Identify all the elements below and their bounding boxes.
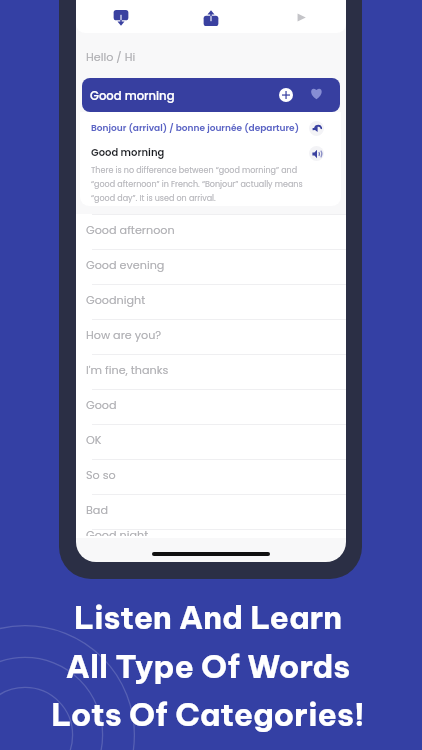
button[interactable]: I'm fine, thanks [76,354,346,389]
button[interactable]: Favorite [310,87,324,101]
button[interactable]: Good night [76,529,346,538]
staticText: Goodnight [86,292,146,308]
button[interactable]: Good morning [82,78,340,112]
button[interactable]: Good evening [76,249,346,284]
button[interactable]: Play [256,0,346,33]
staticText: All Type Of Words [0,646,419,686]
staticText: I'm fine, thanks [86,362,169,378]
button[interactable]: Upload [166,0,256,33]
staticText: Good morning [90,88,175,104]
staticText: Bad [86,502,108,518]
staticText: Good morning [91,145,165,159]
button[interactable]: Bad [76,494,346,529]
staticText: Hello / Hi [86,49,136,65]
staticText: Good afternoon [86,222,175,238]
button[interactable]: Play slowly [309,121,324,136]
staticText: Listen And Learn [0,597,419,637]
staticText: Good evening [86,257,165,273]
button[interactable]: Add to my list [279,88,293,102]
staticText: How are you? [86,327,162,343]
staticText: Good night [86,527,149,536]
button[interactable]: How are you? [76,319,346,354]
button[interactable]: OK [76,424,346,459]
button[interactable]: Goodnight [76,284,346,319]
button[interactable]: Download [76,0,166,33]
staticText: Bonjour (arrival) / bonne journée (depar… [91,122,300,135]
staticText: OK [86,432,102,448]
button[interactable]: Good afternoon [76,214,346,249]
button[interactable]: Good [76,389,346,424]
staticText: So so [86,467,116,483]
button[interactable]: So so [76,459,346,494]
staticText: There is no difference between “good mor… [91,165,315,204]
button[interactable]: Play pronunciation [309,146,324,161]
staticText: Good [86,397,117,413]
staticText: Lots Of Categories! [0,694,419,734]
